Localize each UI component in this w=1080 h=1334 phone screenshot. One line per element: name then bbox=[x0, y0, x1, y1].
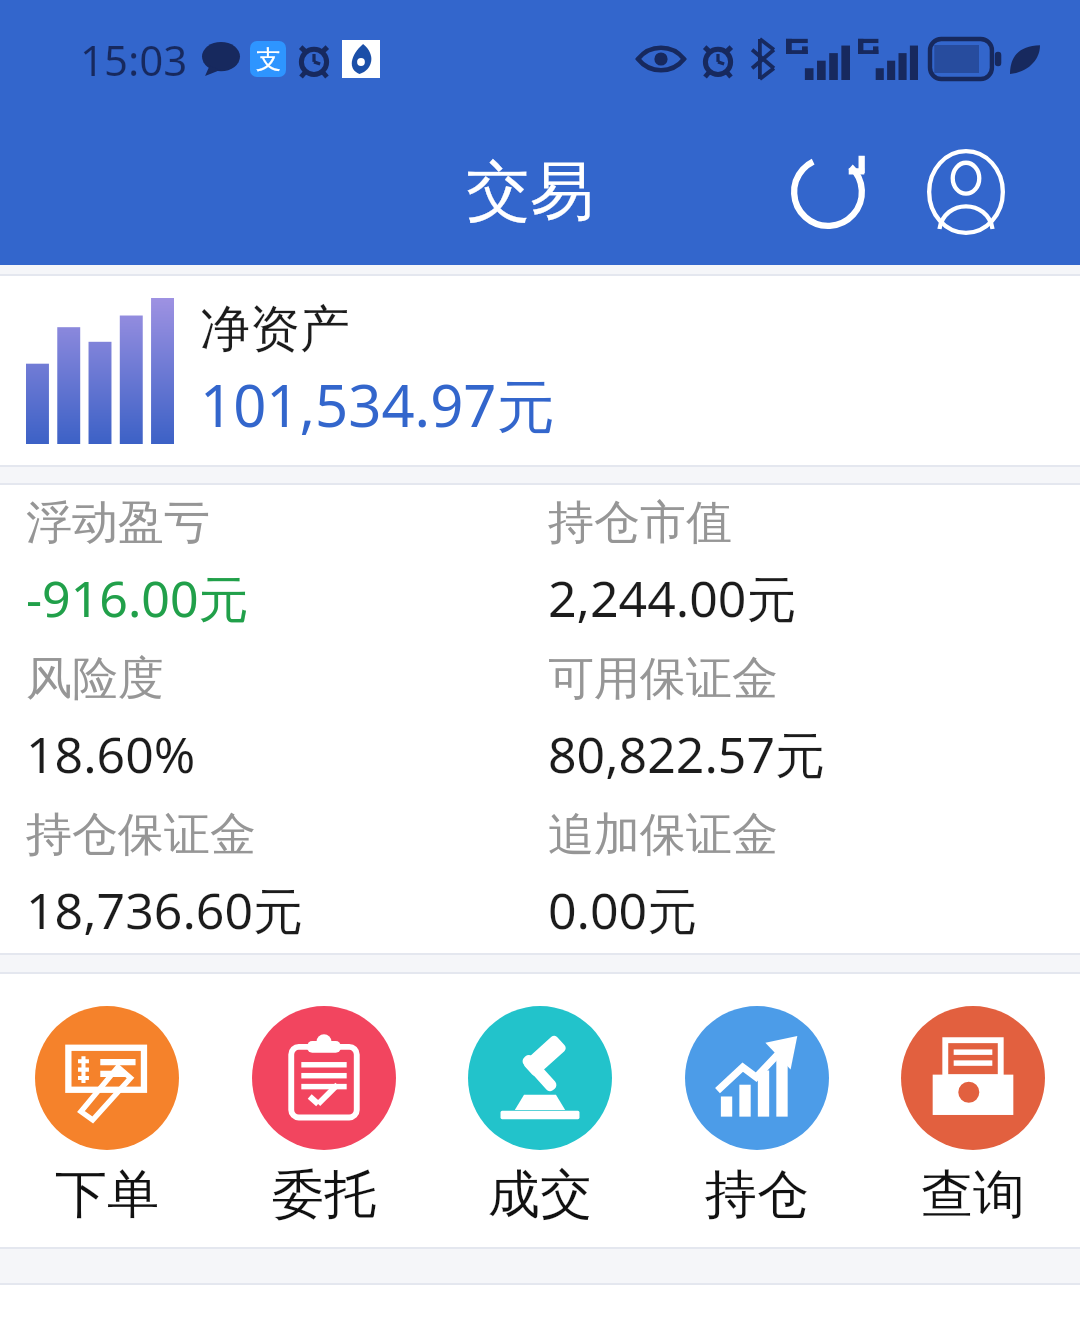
staticText: 委托 bbox=[272, 1162, 376, 1228]
staticText: 持仓保证金 bbox=[26, 806, 256, 864]
staticText: 80,822.57元 bbox=[548, 720, 825, 788]
staticText: 101,534.97元 bbox=[200, 365, 555, 444]
staticText: 支 bbox=[256, 44, 281, 75]
button[interactable]: 风险度 bbox=[26, 641, 540, 797]
button[interactable]: Refresh bbox=[776, 140, 880, 244]
staticText: 下单 bbox=[55, 1162, 159, 1228]
button[interactable]: 持仓市值 bbox=[548, 485, 1080, 641]
staticText: 0.00元 bbox=[548, 876, 698, 944]
staticText: 浮动盈亏 bbox=[26, 494, 210, 552]
button[interactable]: 可用保证金 bbox=[548, 641, 1080, 797]
button[interactable]: 委托 bbox=[235, 1006, 413, 1228]
button[interactable]: 下单 bbox=[18, 1006, 196, 1228]
staticText: 15:03 bbox=[80, 31, 188, 88]
staticText: 风险度 bbox=[26, 650, 164, 708]
staticText: 2,244.00元 bbox=[548, 564, 797, 632]
staticText: 18.60% bbox=[26, 720, 196, 788]
staticText: -916.00元 bbox=[26, 564, 249, 632]
button[interactable]: 浮动盈亏 bbox=[26, 485, 540, 641]
staticText: 净资产 bbox=[200, 298, 350, 361]
staticText: 可用保证金 bbox=[548, 650, 778, 708]
staticText: 持仓 bbox=[705, 1162, 809, 1228]
button[interactable]: 追加保证金 bbox=[548, 797, 1080, 953]
staticText: 18,736.60元 bbox=[26, 876, 303, 944]
button[interactable]: 持仓 bbox=[668, 1006, 846, 1228]
staticText: 追加保证金 bbox=[548, 806, 778, 864]
button[interactable]: 查询 bbox=[884, 1006, 1062, 1228]
button[interactable]: 持仓保证金 bbox=[26, 797, 540, 953]
staticText: 持仓市值 bbox=[548, 494, 732, 552]
staticText: 查询 bbox=[921, 1162, 1025, 1228]
button[interactable]: 净资产 bbox=[0, 276, 1080, 465]
staticText: 成交 bbox=[488, 1162, 592, 1228]
staticText: 交易 bbox=[466, 151, 594, 232]
button[interactable]: Account bbox=[914, 140, 1018, 244]
button[interactable]: 成交 bbox=[451, 1006, 629, 1228]
